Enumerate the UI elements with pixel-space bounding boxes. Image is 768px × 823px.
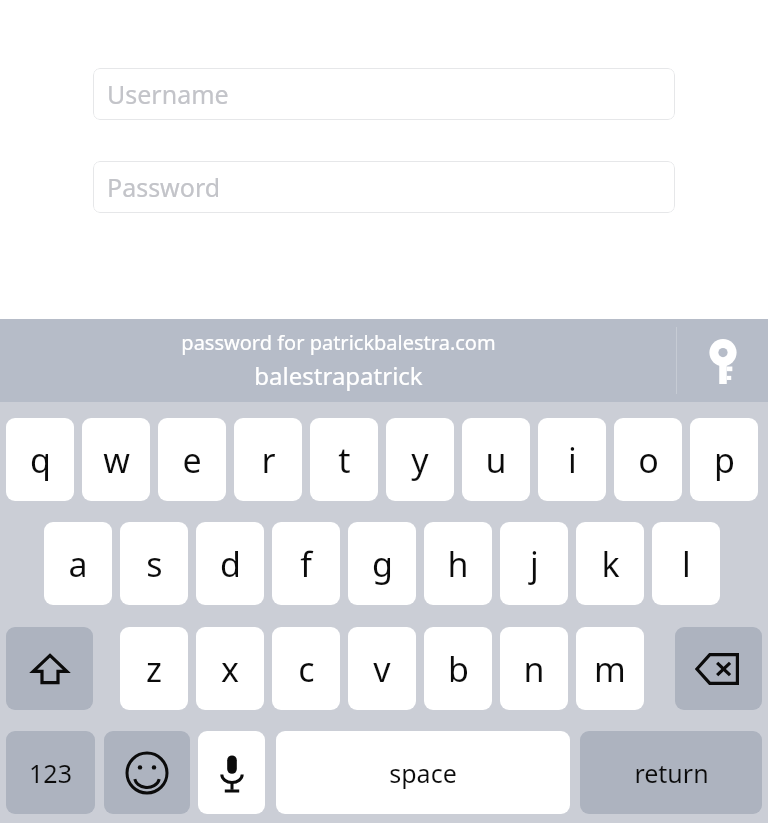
staticText: p	[714, 437, 735, 483]
button[interactable]: x	[196, 627, 264, 710]
staticText: Username	[107, 77, 229, 111]
staticText: s	[146, 541, 163, 587]
button[interactable]: h	[424, 522, 492, 605]
button[interactable]: z	[120, 627, 188, 710]
button[interactable]: n	[500, 627, 568, 710]
staticText: return	[634, 756, 709, 790]
staticText: q	[30, 437, 51, 483]
button[interactable]: k	[576, 522, 644, 605]
button[interactable]: m	[576, 627, 644, 710]
staticText: a	[68, 541, 88, 587]
button[interactable]: password for patrickbalestra.com	[0, 319, 676, 402]
staticText: y	[411, 437, 429, 483]
staticText: m	[594, 646, 626, 692]
staticText: h	[447, 541, 469, 587]
staticText: r	[261, 437, 276, 483]
button[interactable]: p	[690, 418, 758, 501]
button[interactable]: j	[500, 522, 568, 605]
button[interactable]: v	[348, 627, 416, 710]
staticText: n	[523, 646, 545, 692]
staticText: d	[220, 541, 241, 587]
button[interactable]: a	[44, 522, 112, 605]
button[interactable]: b	[424, 627, 492, 710]
button[interactable]: Backspace	[675, 627, 762, 710]
button[interactable]: g	[348, 522, 416, 605]
button[interactable]: c	[272, 627, 340, 710]
button[interactable]: s	[120, 522, 188, 605]
staticText: v	[373, 646, 391, 692]
button[interactable]: 123	[6, 731, 95, 814]
staticText: x	[221, 646, 239, 692]
staticText: c	[298, 646, 315, 692]
staticText: l	[682, 541, 691, 587]
button[interactable]: r	[234, 418, 302, 501]
button[interactable]: space	[276, 731, 570, 814]
staticText: z	[146, 646, 162, 692]
staticText: g	[372, 541, 393, 587]
staticText: space	[389, 756, 457, 790]
button[interactable]: d	[196, 522, 264, 605]
button[interactable]: t	[310, 418, 378, 501]
button[interactable]: Passwords	[677, 319, 768, 402]
button[interactable]: y	[386, 418, 454, 501]
staticText: w	[103, 437, 130, 483]
staticText: b	[448, 646, 469, 692]
button[interactable]: i	[538, 418, 606, 501]
button[interactable]: o	[614, 418, 682, 501]
button[interactable]: Emoji	[104, 731, 190, 814]
button[interactable]: Dictation	[198, 731, 265, 814]
button[interactable]: return	[580, 731, 762, 814]
staticText: i	[568, 437, 577, 483]
staticText: Password	[107, 170, 221, 204]
button[interactable]: Shift	[6, 627, 93, 710]
staticText: balestrapatrick	[254, 359, 423, 392]
button[interactable]: e	[158, 418, 226, 501]
staticText: k	[601, 541, 620, 587]
button[interactable]: f	[272, 522, 340, 605]
button[interactable]: u	[462, 418, 530, 501]
staticText: 123	[29, 756, 72, 790]
button[interactable]: Password	[93, 161, 675, 213]
button[interactable]: Username	[93, 68, 675, 120]
staticText: t	[338, 437, 351, 483]
button[interactable]: q	[6, 418, 74, 501]
staticText: e	[182, 437, 202, 483]
button[interactable]: l	[652, 522, 720, 605]
button[interactable]: w	[82, 418, 150, 501]
staticText: j	[530, 541, 539, 587]
staticText: u	[485, 437, 507, 483]
staticText: password for patrickbalestra.com	[181, 329, 496, 356]
staticText: f	[300, 541, 312, 587]
staticText: o	[638, 437, 659, 483]
